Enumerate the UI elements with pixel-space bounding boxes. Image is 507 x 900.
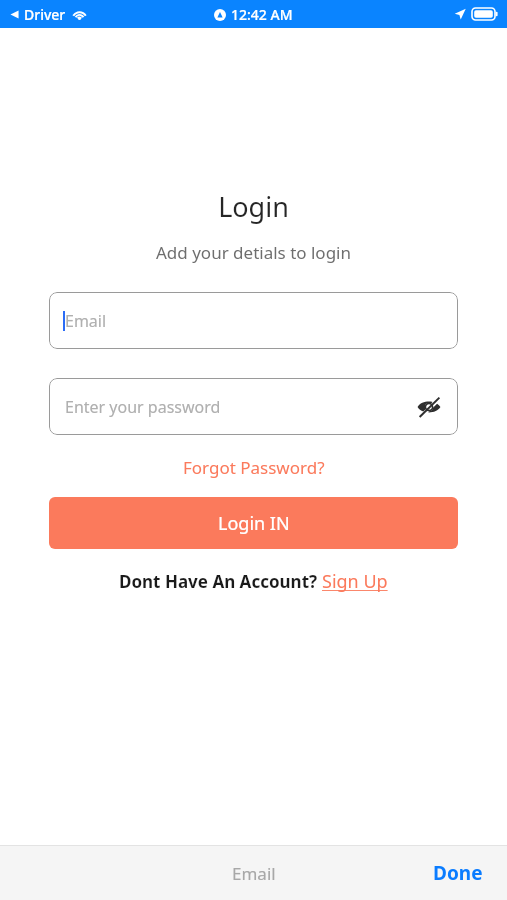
button[interactable]: Show password	[412, 390, 446, 424]
staticText: Dont Have An Account?	[119, 570, 322, 593]
button[interactable]: Login IN	[49, 497, 458, 549]
button[interactable]: Done	[409, 850, 507, 896]
button[interactable]: Email	[49, 292, 458, 349]
staticText: Email	[65, 310, 107, 332]
staticText: Enter your password	[65, 396, 221, 418]
staticText: Sign Up	[322, 569, 388, 594]
staticText: Driver	[24, 5, 66, 24]
staticText: Forgot Password?	[183, 456, 325, 479]
staticText: Add your detials to login	[0, 241, 507, 264]
staticText: Done	[433, 860, 483, 886]
button[interactable]: Forgot Password?	[177, 452, 331, 483]
staticText: Email	[232, 862, 276, 885]
staticText: 12:42 AM	[231, 5, 293, 24]
staticText: Login IN	[218, 511, 290, 536]
button[interactable]: Enter your password	[49, 378, 458, 435]
staticText: Login	[0, 188, 507, 225]
button[interactable]: Sign Up	[322, 569, 388, 594]
